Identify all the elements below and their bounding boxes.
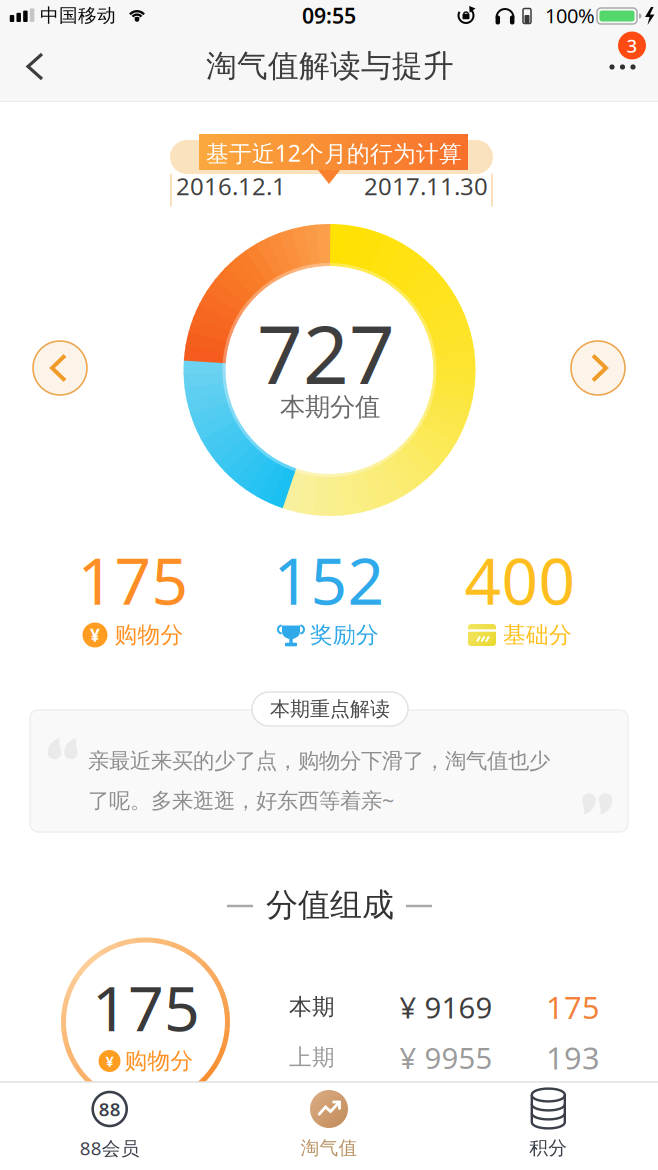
staticText: 购物分	[114, 621, 183, 649]
button[interactable]: 淘气值	[219, 1082, 438, 1170]
staticText: 2016.12.1	[176, 170, 286, 202]
staticText: 本期重点解读	[270, 697, 390, 721]
staticText: 88	[99, 1097, 121, 1121]
staticText: 193	[546, 1037, 600, 1078]
staticText: 152	[273, 537, 384, 622]
staticText: 淘气值	[300, 1136, 357, 1159]
staticText: 基于近12个月的行为计算	[206, 138, 462, 168]
staticText: 400	[464, 537, 575, 622]
staticText: ¥	[105, 1051, 113, 1071]
staticText: 3	[626, 33, 637, 58]
staticText: 购物分	[124, 1047, 193, 1075]
staticText: 2017.11.30	[364, 170, 488, 202]
staticText: ¥ 9955	[399, 1038, 492, 1077]
staticText: 淘气值解读与提升	[206, 47, 454, 85]
staticText: 175	[546, 987, 600, 1027]
button[interactable]	[571, 341, 625, 395]
staticText: ¥ 9169	[399, 987, 492, 1026]
staticText: 本期	[289, 993, 335, 1021]
button[interactable]	[4, 36, 64, 96]
staticText: 奖励分	[310, 621, 379, 649]
staticText: 本期分值	[280, 391, 380, 422]
staticText: 分值组成	[266, 885, 394, 925]
staticText: 727	[257, 300, 395, 406]
staticText: 积分	[529, 1136, 567, 1159]
staticText: 上期	[289, 1044, 335, 1071]
button[interactable]	[33, 341, 87, 395]
staticText: 175	[77, 537, 188, 622]
staticText: 100%	[545, 2, 595, 29]
staticText: 基础分	[503, 621, 572, 649]
button[interactable]: 88	[0, 1082, 219, 1170]
staticText: 09:55	[302, 1, 356, 30]
staticText: ¥	[90, 623, 100, 646]
staticText: 亲最近来买的少了点，购物分下滑了，淘气值也少	[88, 748, 550, 774]
staticText: 88会员	[80, 1136, 140, 1160]
staticText: 了呢。多来逛逛，好东西等着亲~	[88, 786, 394, 814]
button[interactable]: 积分	[439, 1082, 658, 1170]
button[interactable]	[580, 15, 655, 85]
staticText: 中国移动	[40, 4, 116, 27]
staticText: 175	[92, 965, 200, 1049]
